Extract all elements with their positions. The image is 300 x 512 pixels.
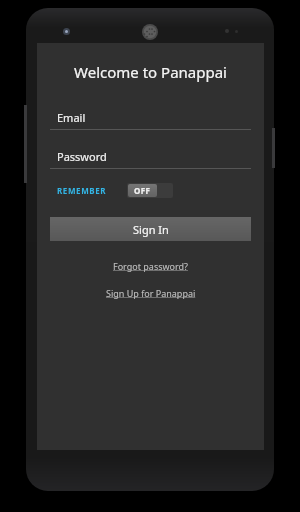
staticText: OFF	[134, 185, 151, 196]
button[interactable]: Sign In	[50, 217, 251, 241]
staticText: Welcome to Panappai	[74, 62, 227, 82]
button[interactable]: Sign Up for Panappai	[37, 284, 264, 302]
staticText: Sign In	[133, 222, 169, 237]
button[interactable]: Password	[50, 148, 251, 169]
staticText: Sign Up for Panappai	[106, 287, 196, 299]
staticText: REMEMBER	[57, 185, 107, 196]
staticText: Forgot password?	[113, 260, 189, 272]
button[interactable]: Remember me, off	[127, 183, 173, 198]
button[interactable]: Email	[50, 109, 251, 130]
staticText: Email	[57, 110, 86, 125]
button[interactable]: Forgot password?	[37, 257, 264, 275]
staticText: Password	[57, 149, 107, 164]
